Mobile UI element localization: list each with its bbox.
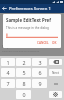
button[interactable]: 4 (1, 68, 15, 77)
button[interactable]: 8 (16, 79, 31, 88)
button[interactable]: 5 (16, 68, 31, 77)
staticText: 9 (38, 80, 42, 87)
button[interactable]: 1 (1, 58, 15, 66)
staticText: 7 (6, 80, 10, 87)
button[interactable]: 3 (32, 58, 47, 66)
staticText: Summary of the edit text preference (2, 50, 40, 53)
staticText: 2 (22, 59, 26, 66)
button[interactable]: 7 (1, 79, 15, 88)
staticText: This is a message in the dialog (6, 26, 49, 30)
button[interactable]: Enter (49, 80, 62, 87)
staticText: 5 (22, 69, 26, 76)
staticText: CANCEL (37, 41, 49, 45)
button[interactable]: OK (51, 40, 58, 46)
button[interactable]: CANCEL (36, 40, 50, 46)
staticText: Sample EditText Pref (6, 17, 51, 23)
button[interactable]: Backspace (49, 59, 62, 65)
button[interactable]: 0 (16, 90, 31, 99)
button[interactable]: 2 (16, 58, 31, 66)
staticText: 8 (22, 80, 26, 87)
button[interactable] (6, 33, 58, 38)
staticText: 3 (38, 59, 42, 66)
button[interactable]: 9 (32, 79, 47, 88)
staticText: 1 (6, 59, 10, 66)
button[interactable]: 6 (32, 68, 47, 77)
staticText: Next (52, 71, 59, 75)
staticText: 6 (38, 69, 42, 76)
staticText: Preferences Screen 1 (9, 6, 51, 12)
staticText: OK (52, 41, 57, 45)
button[interactable]: Back (0, 4, 9, 13)
button[interactable]: Settings (49, 91, 62, 98)
staticText: 0 (22, 91, 26, 98)
staticText: Sample EditText Preference (2, 45, 36, 49)
button[interactable]: Next (49, 69, 62, 76)
staticText: 4 (6, 69, 10, 76)
